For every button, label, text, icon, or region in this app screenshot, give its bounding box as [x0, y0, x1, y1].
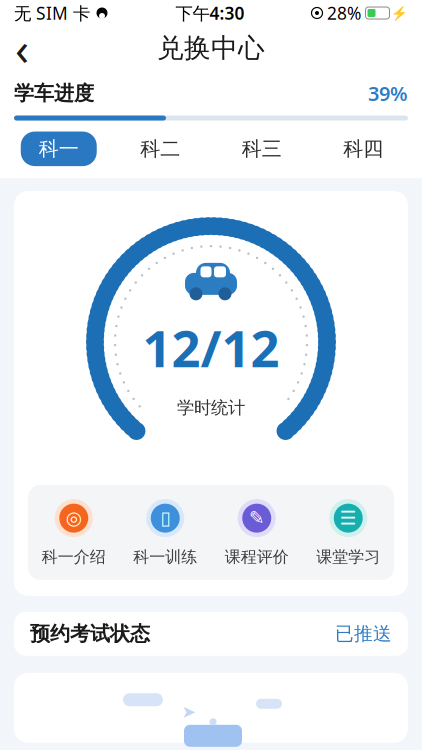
- staticText: 12/12: [142, 314, 279, 381]
- staticText: 下午4:30: [175, 1, 244, 24]
- staticText: 科一: [39, 137, 79, 161]
- button[interactable]: ▯: [119, 498, 211, 567]
- staticText: ✎: [249, 507, 265, 529]
- button[interactable]: 科二: [109, 132, 211, 166]
- button[interactable]: ✎: [211, 498, 302, 567]
- staticText: 无 SIM 卡: [14, 1, 90, 24]
- button[interactable]: ◎: [28, 498, 119, 567]
- staticText: ☰: [340, 507, 357, 529]
- staticText: 科一介绍: [42, 547, 106, 567]
- staticText: 学时统计: [177, 397, 245, 418]
- staticText: 课堂学习: [316, 547, 380, 567]
- staticText: 科三: [242, 137, 282, 161]
- staticText: 28%: [327, 1, 361, 24]
- staticText: ⚡: [391, 5, 408, 21]
- staticText: 科二: [140, 137, 180, 161]
- button[interactable]: Back: [0, 26, 44, 70]
- button[interactable]: 科三: [211, 132, 312, 166]
- button[interactable]: 科四: [312, 132, 414, 166]
- staticText: 科四: [343, 137, 383, 161]
- button[interactable]: 预约考试状态: [14, 612, 408, 656]
- button[interactable]: ☰: [302, 498, 394, 567]
- button[interactable]: 科一: [8, 132, 109, 166]
- staticText: 已推送: [335, 622, 392, 645]
- staticText: 兑换中心: [157, 32, 265, 64]
- staticText: 学车进度: [14, 81, 94, 106]
- staticText: ◎: [66, 507, 82, 529]
- staticText: 39%: [368, 80, 408, 107]
- staticText: 课程评价: [225, 547, 289, 567]
- staticText: 预约考试状态: [30, 621, 150, 646]
- staticText: ‹: [15, 18, 29, 78]
- staticText: ➤: [181, 702, 196, 722]
- staticText: 科一训练: [133, 547, 197, 567]
- staticText: ▯: [160, 507, 170, 529]
